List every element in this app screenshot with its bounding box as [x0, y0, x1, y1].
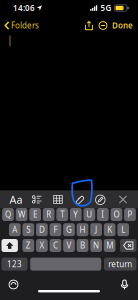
- staticText: 5G: [100, 3, 111, 13]
- button[interactable]: V: [63, 239, 75, 252]
- staticText: H: [79, 224, 85, 235]
- staticText: D: [39, 224, 45, 235]
- staticText: O: [113, 209, 119, 220]
- button[interactable]: D: [36, 223, 48, 236]
- staticText: S: [26, 224, 30, 235]
- staticText: E: [33, 209, 37, 220]
- button[interactable]: Q: [2, 208, 14, 221]
- button[interactable]: Markup: [89, 191, 110, 208]
- staticText: F: [53, 224, 57, 235]
- staticText: N: [93, 240, 99, 251]
- button[interactable]: E: [29, 208, 41, 221]
- button[interactable]: space: [30, 258, 101, 271]
- button[interactable]: Format: [5, 191, 26, 208]
- staticText: T: [60, 209, 64, 220]
- button[interactable]: Share: [82, 17, 95, 33]
- button[interactable]: U: [83, 208, 95, 221]
- staticText: M: [106, 240, 113, 251]
- staticText: P: [127, 209, 132, 220]
- button[interactable]: return: [104, 258, 136, 271]
- button[interactable]: Z: [22, 239, 34, 252]
- staticText: Q: [5, 209, 11, 220]
- staticText: return: [108, 259, 132, 269]
- button[interactable]: S: [22, 223, 34, 236]
- staticText: G: [66, 224, 72, 235]
- staticText: J: [95, 224, 97, 235]
- button[interactable]: Y: [70, 208, 82, 221]
- staticText: B: [80, 240, 85, 251]
- button[interactable]: H: [77, 223, 88, 236]
- button[interactable]: More: [95, 17, 110, 33]
- staticText: Y: [73, 209, 78, 220]
- button[interactable]: I: [97, 208, 109, 221]
- staticText: Folders: [11, 20, 39, 31]
- button[interactable]: Close: [112, 191, 133, 208]
- button[interactable]: A: [9, 223, 21, 236]
- staticText: A: [12, 224, 17, 235]
- button[interactable]: Table: [47, 191, 68, 208]
- staticText: Aa: [9, 192, 22, 207]
- staticText: X: [39, 240, 44, 251]
- button[interactable]: P: [124, 208, 136, 221]
- button[interactable]: O: [111, 208, 122, 221]
- staticText: I: [101, 209, 104, 220]
- button[interactable]: M: [104, 239, 115, 252]
- button[interactable]: Delete: [120, 239, 136, 252]
- button[interactable]: L: [117, 223, 129, 236]
- button[interactable]: W: [16, 208, 27, 221]
- button[interactable]: K: [104, 223, 115, 236]
- button[interactable]: R: [43, 208, 54, 221]
- button[interactable]: X: [36, 239, 48, 252]
- staticText: Z: [26, 240, 31, 251]
- button[interactable]: Done: [110, 17, 134, 33]
- staticText: 14:06: [13, 3, 35, 13]
- staticText: V: [66, 240, 71, 251]
- button[interactable]: Folders: [0, 17, 39, 34]
- button[interactable]: Emoji: [8, 279, 18, 289]
- button[interactable]: T: [56, 208, 68, 221]
- staticText: C: [53, 240, 58, 251]
- staticText: U: [86, 209, 92, 220]
- staticText: R: [46, 209, 51, 220]
- button[interactable]: C: [50, 239, 61, 252]
- button[interactable]: Checklist: [26, 191, 47, 208]
- button[interactable]: G: [63, 223, 75, 236]
- staticText: 123: [7, 259, 22, 269]
- button[interactable]: Dictate: [119, 279, 129, 290]
- button[interactable]: J: [90, 223, 102, 236]
- button[interactable]: B: [77, 239, 88, 252]
- staticText: L: [121, 224, 125, 235]
- button[interactable]: F: [50, 223, 61, 236]
- button[interactable]: N: [90, 239, 102, 252]
- button[interactable]: Attach: [68, 191, 89, 208]
- button[interactable]: 123: [1, 258, 27, 271]
- button[interactable]: Shift: [1, 239, 18, 252]
- staticText: Done: [112, 20, 133, 31]
- staticText: W: [18, 209, 25, 220]
- staticText: K: [107, 224, 112, 235]
